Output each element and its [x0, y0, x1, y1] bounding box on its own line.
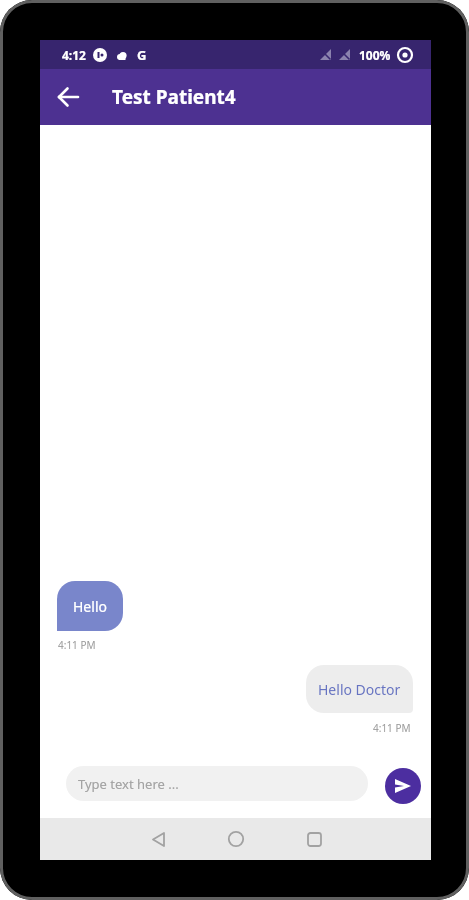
- staticText: 4:12: [62, 47, 86, 63]
- button[interactable]: [294, 819, 334, 859]
- staticText: Test Patient4: [112, 84, 236, 110]
- button[interactable]: Hello: [57, 581, 123, 631]
- staticText: Type text here ...: [78, 775, 179, 793]
- button[interactable]: Type text here ...: [66, 766, 368, 801]
- button[interactable]: [138, 819, 178, 859]
- staticText: 100%: [359, 47, 391, 63]
- button[interactable]: Hello Doctor: [306, 665, 413, 713]
- button[interactable]: [216, 819, 256, 859]
- staticText: G: [137, 46, 147, 64]
- staticText: Hello Doctor: [318, 680, 401, 699]
- staticText: 4:11 PM: [373, 721, 411, 735]
- button[interactable]: [40, 69, 96, 125]
- button[interactable]: [385, 768, 421, 804]
- staticText: Hello: [73, 597, 107, 616]
- staticText: 4:11 PM: [58, 638, 96, 652]
